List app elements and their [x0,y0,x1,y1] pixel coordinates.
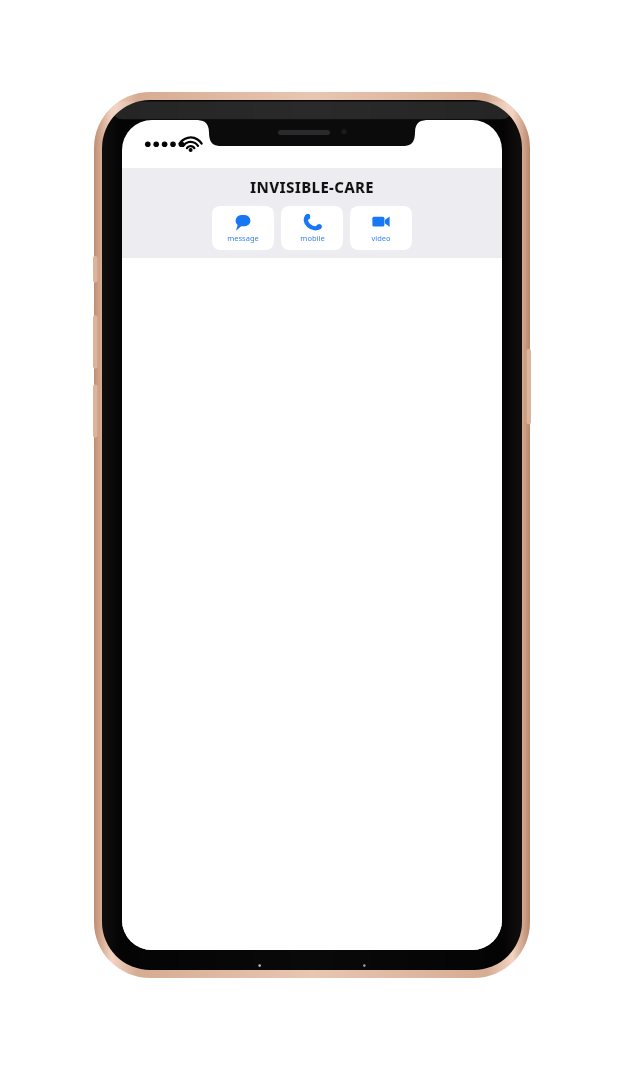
button[interactable]: mobile [281,206,343,250]
button[interactable]: video [350,206,412,250]
staticText: INVISIBLE-CARE [250,177,374,197]
button[interactable]: message [212,206,274,250]
staticText: message [227,233,259,243]
staticText: video [371,233,391,243]
staticText: mobile [300,233,325,243]
